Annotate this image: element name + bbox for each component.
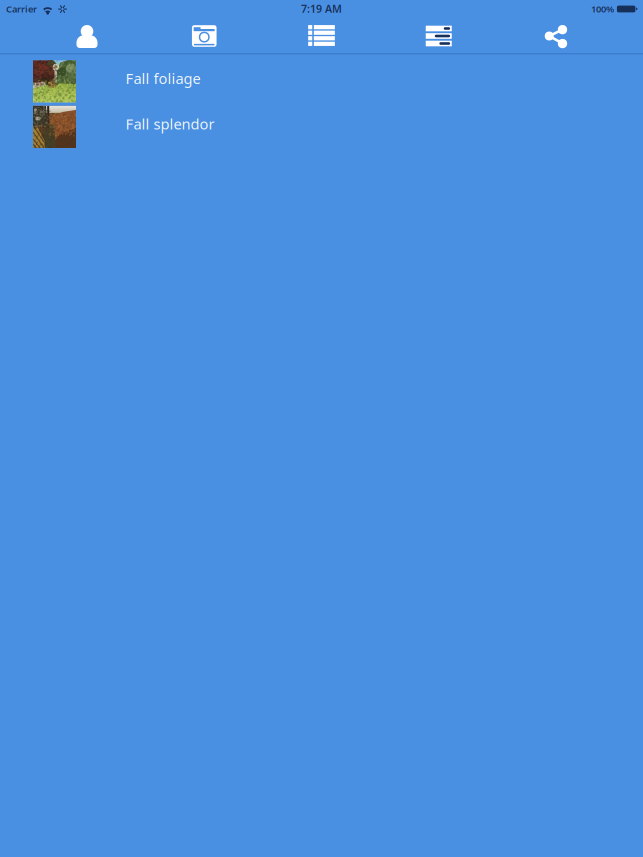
button[interactable]: Share [497, 20, 615, 53]
staticText: Carrier [6, 3, 37, 15]
staticText: Fall foliage [125, 69, 200, 88]
button[interactable]: Profile [28, 20, 146, 53]
button[interactable]: Fall foliage [0, 58, 643, 104]
button[interactable]: Adjust [380, 20, 497, 53]
staticText: 7:19 AM [301, 1, 342, 16]
button[interactable]: Camera [146, 20, 263, 53]
button[interactable]: Albums [263, 20, 380, 53]
staticText: Fall splendor [125, 114, 214, 134]
staticText: 100% [591, 3, 614, 15]
button[interactable]: Fall splendor [0, 104, 643, 150]
